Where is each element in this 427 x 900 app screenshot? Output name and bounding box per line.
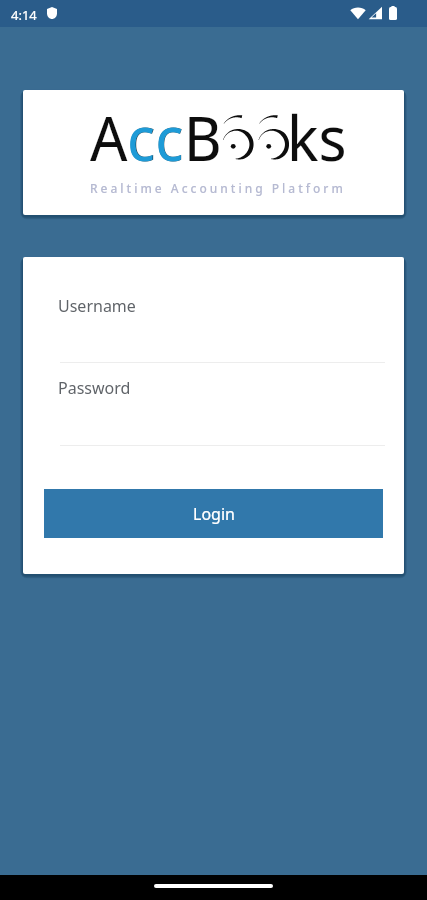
staticText: ks [287, 95, 347, 169]
button[interactable]: Username [60, 281, 385, 363]
staticText: Login [193, 503, 235, 525]
staticText: Username [58, 295, 136, 317]
other: Wi-Fi [350, 6, 366, 20]
staticText: AccB [90, 95, 222, 169]
staticText: Realtime Accounting Platform [90, 180, 346, 196]
staticText: cc [127, 95, 184, 169]
staticText: 4:14 [11, 6, 37, 24]
staticText: Password [58, 377, 131, 399]
button[interactable]: Login [44, 489, 383, 538]
other: Battery [389, 6, 397, 20]
other: VPN active [47, 7, 57, 19]
button[interactable]: Password [60, 363, 385, 446]
other: Mobile signal [368, 6, 382, 20]
button[interactable]: Home [154, 884, 273, 888]
